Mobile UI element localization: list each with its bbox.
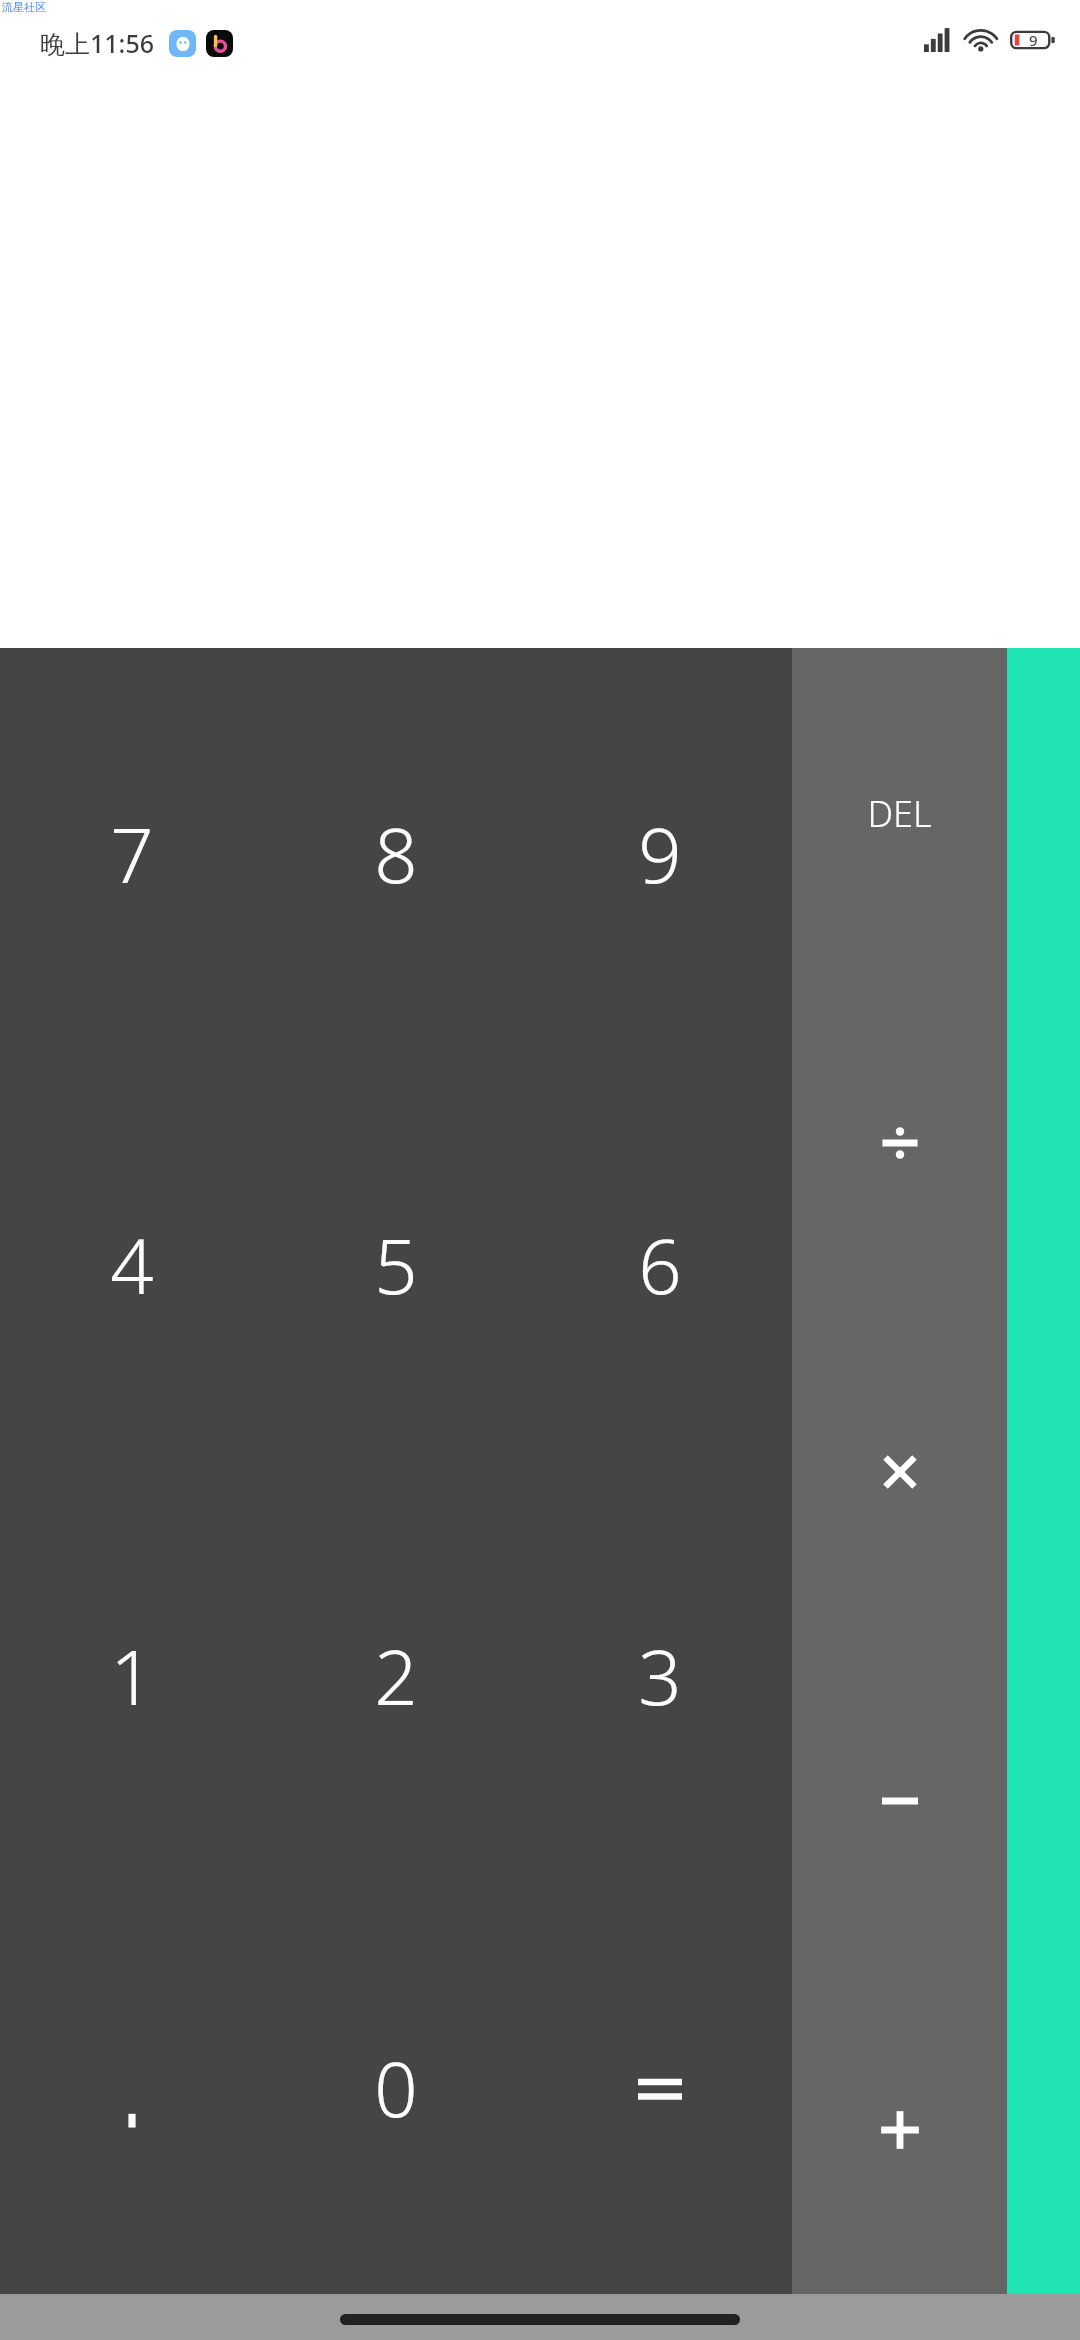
staticText: 5 xyxy=(374,1213,418,1317)
staticText: 晚上11:56 xyxy=(40,26,155,60)
staticText: 流星社区 xyxy=(2,0,46,14)
staticText: 6 xyxy=(638,1213,682,1317)
button[interactable]: Multiply xyxy=(792,1307,1007,1636)
staticText: 4 xyxy=(110,1213,154,1317)
staticText: DEL xyxy=(867,789,932,838)
button[interactable]: 2 xyxy=(264,1470,528,1882)
staticText: 8 xyxy=(374,802,418,906)
button[interactable]: 3 xyxy=(528,1470,792,1882)
staticText: 1 xyxy=(110,1624,154,1728)
button[interactable]: Add xyxy=(792,1965,1007,2294)
button[interactable]: 4 xyxy=(0,1059,264,1470)
button[interactable]: 0 xyxy=(264,1882,528,2294)
staticText: 2 xyxy=(374,1624,418,1728)
staticText: 3 xyxy=(638,1624,682,1728)
button[interactable] xyxy=(528,1882,792,2294)
button[interactable] xyxy=(0,1882,264,2294)
staticText: 9 xyxy=(638,802,682,906)
staticText: 7 xyxy=(110,802,154,906)
button[interactable]: 6 xyxy=(528,1059,792,1470)
button[interactable]: 9 xyxy=(528,648,792,1059)
staticText: 0 xyxy=(374,2036,418,2140)
button[interactable]: 5 xyxy=(264,1059,528,1470)
staticText: 9 xyxy=(1029,30,1038,50)
button[interactable]: Subtract xyxy=(792,1636,1007,1965)
button[interactable]: DEL xyxy=(792,648,1007,978)
button[interactable]: 7 xyxy=(0,648,264,1059)
button[interactable]: 8 xyxy=(264,648,528,1059)
button[interactable]: Home xyxy=(340,2314,740,2325)
button[interactable]: 1 xyxy=(0,1470,264,1882)
button[interactable]: Divide xyxy=(792,978,1007,1307)
